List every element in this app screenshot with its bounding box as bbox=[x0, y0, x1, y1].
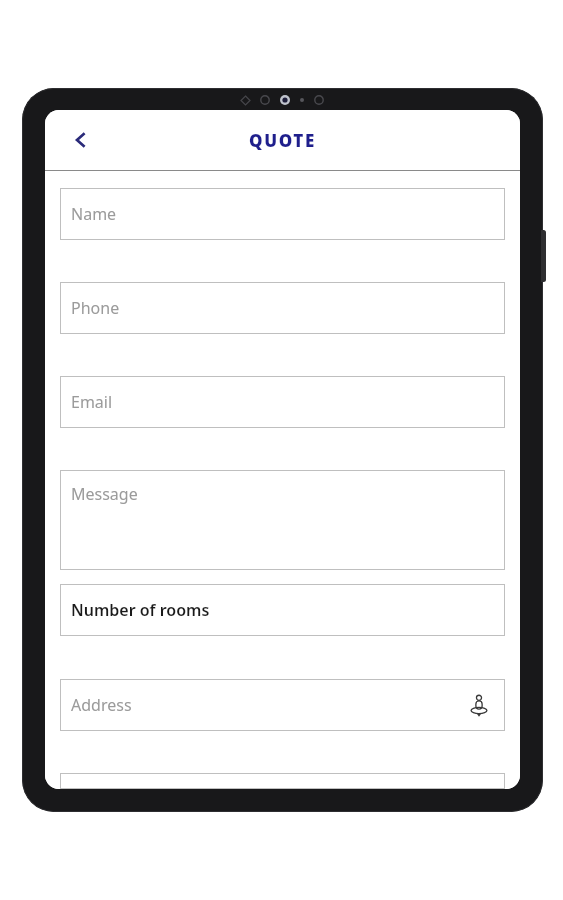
button[interactable]: Email bbox=[60, 376, 505, 428]
button[interactable]: Phone bbox=[60, 282, 505, 334]
button[interactable]: Back bbox=[59, 118, 103, 162]
staticText: Number of rooms bbox=[71, 599, 210, 621]
button[interactable] bbox=[60, 773, 505, 789]
button[interactable]: Number of rooms bbox=[60, 584, 505, 636]
button[interactable]: Message bbox=[60, 470, 505, 570]
button[interactable]: Address bbox=[60, 679, 505, 731]
button[interactable]: Pick location on map bbox=[463, 689, 495, 721]
staticText: Name bbox=[71, 203, 117, 225]
staticText: Address bbox=[71, 694, 132, 716]
button[interactable]: Name bbox=[60, 188, 505, 240]
staticText: Email bbox=[71, 391, 113, 413]
staticText: QUOTE bbox=[249, 129, 316, 152]
staticText: Phone bbox=[71, 297, 120, 319]
staticText: Message bbox=[71, 483, 138, 505]
